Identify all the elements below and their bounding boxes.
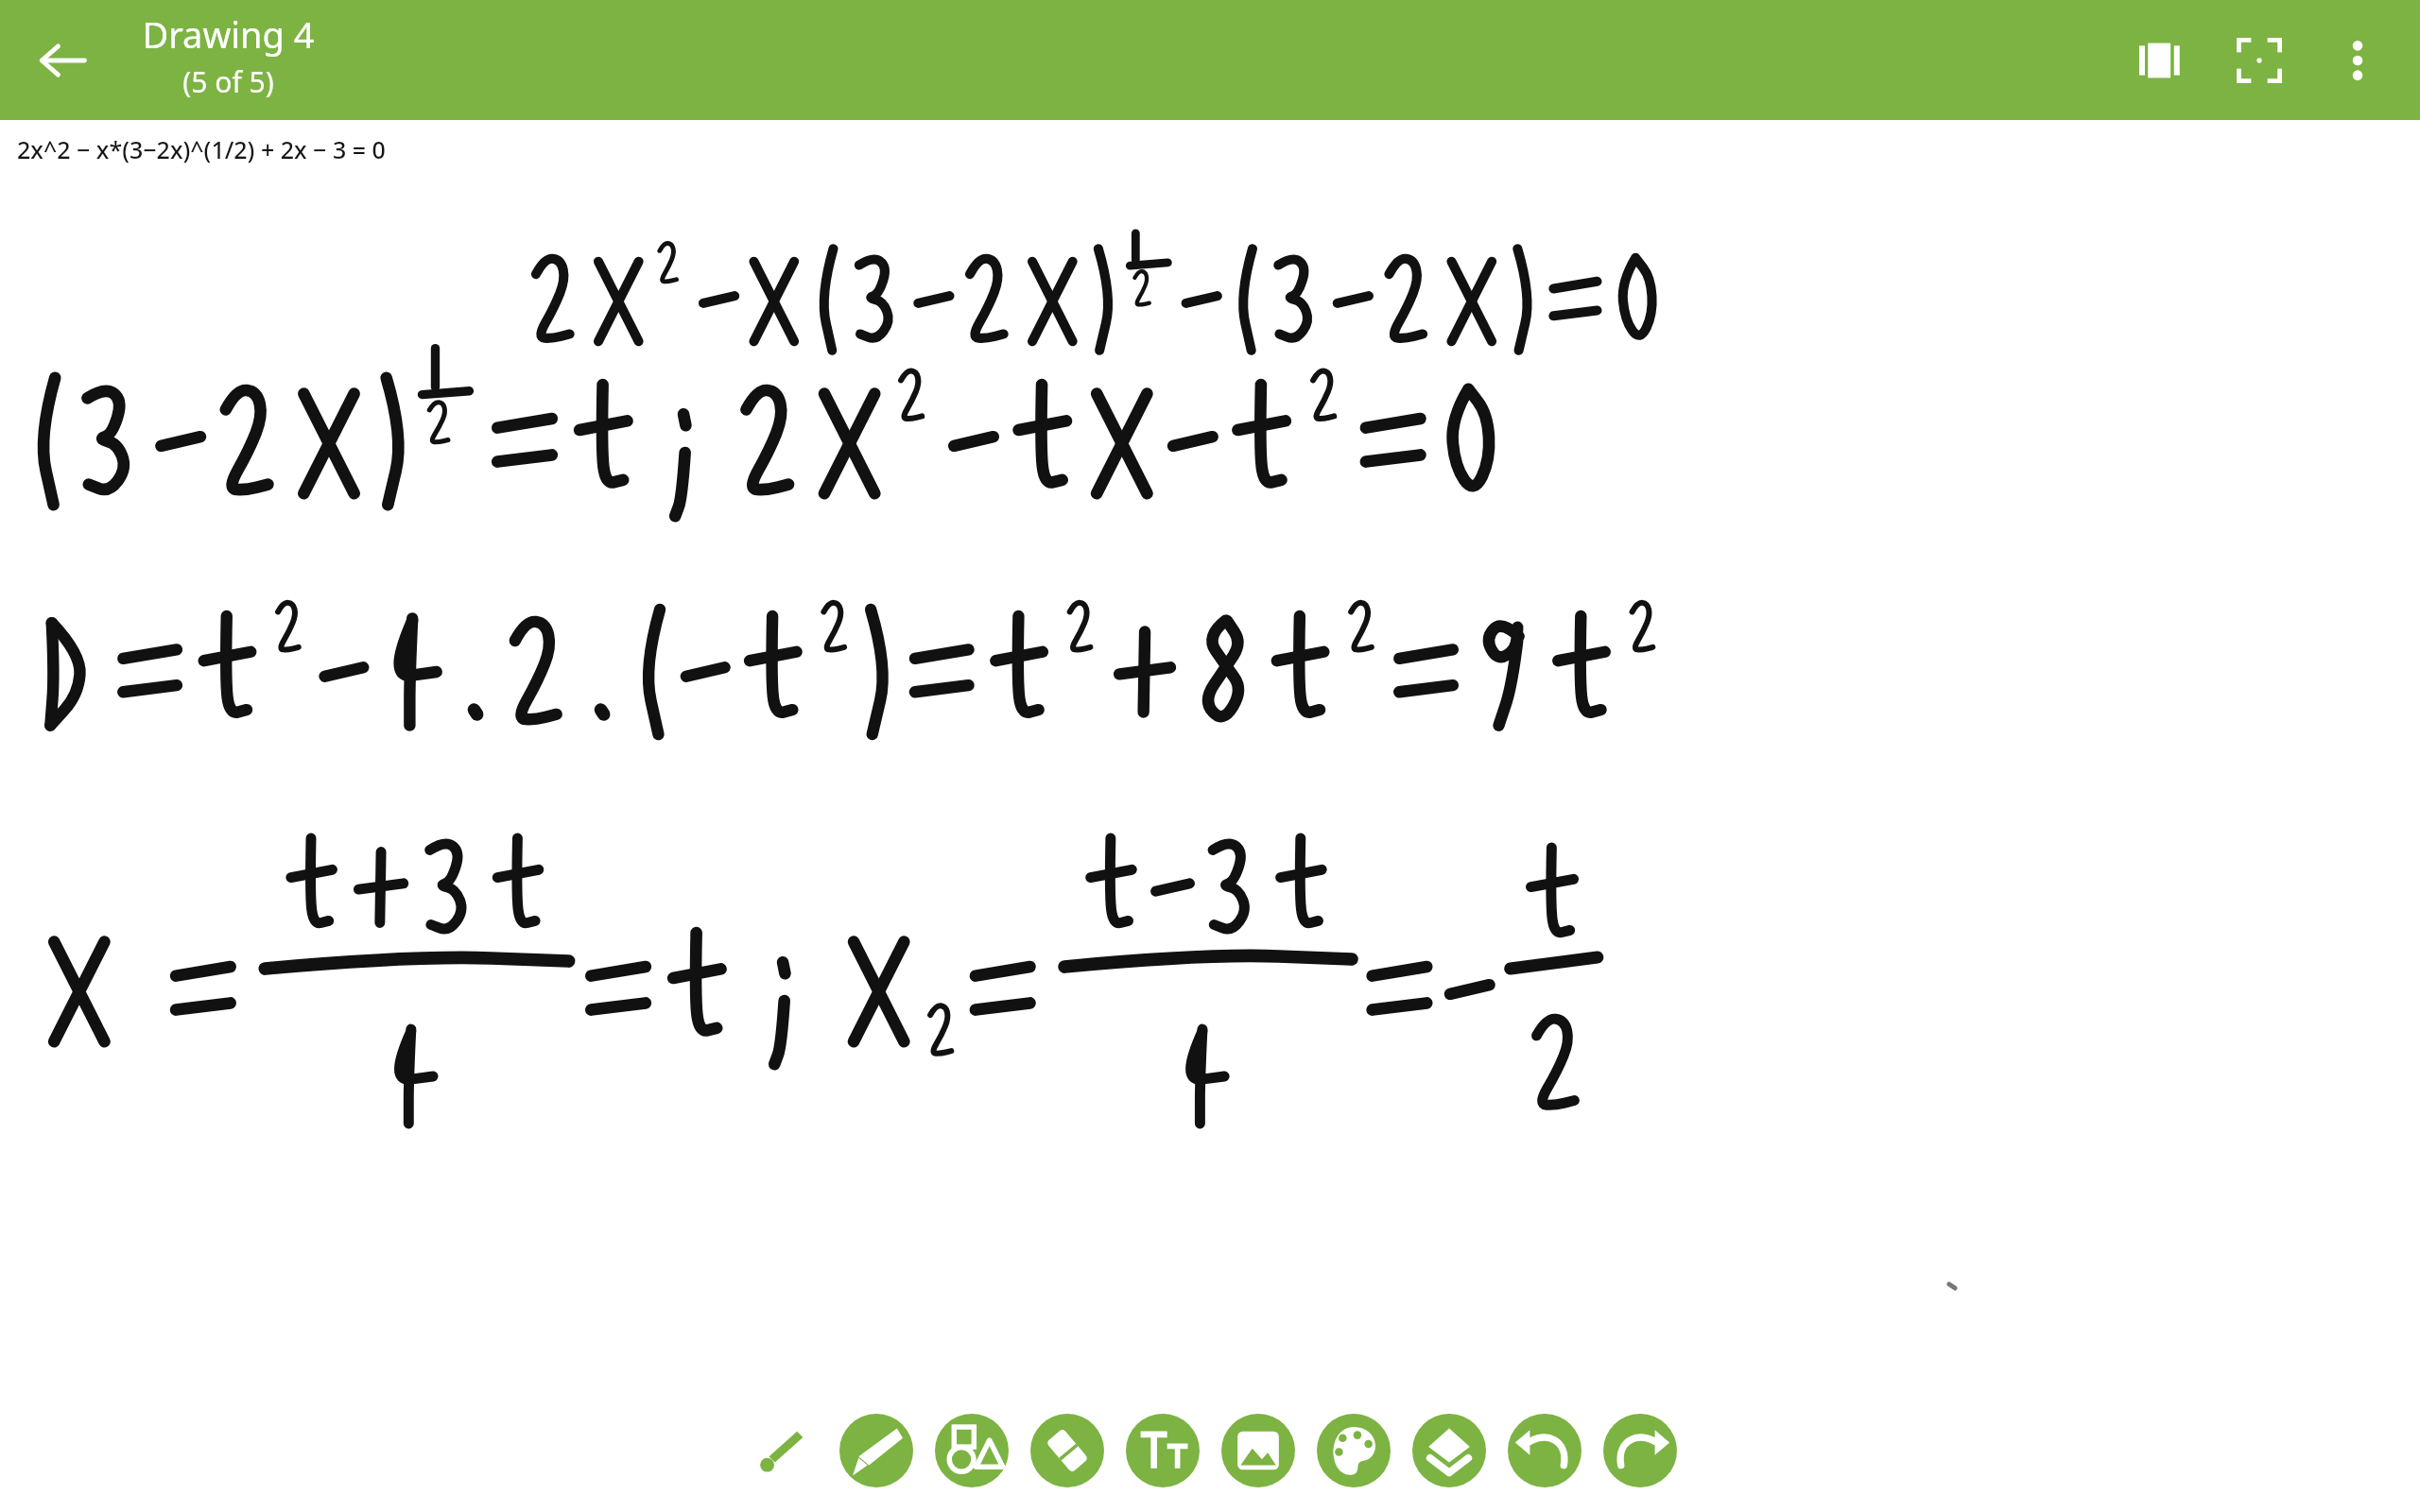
button[interactable]: Shapes	[935, 1414, 1009, 1487]
button[interactable]: Text	[1126, 1414, 1200, 1487]
button[interactable]: More options	[2312, 15, 2403, 106]
staticText: 2x^2 − x*(3−2x)^(1/2) + 2x − 3 = 0	[17, 133, 386, 165]
button[interactable]: Layers	[1412, 1414, 1486, 1487]
button[interactable]: Insert image	[1221, 1414, 1295, 1487]
staticText: Drawing 4	[142, 9, 315, 59]
button[interactable]: Colour palette	[1317, 1414, 1391, 1487]
button[interactable]: Fullscreen	[2214, 15, 2305, 106]
button[interactable]: Marker	[839, 1414, 913, 1487]
button[interactable]: Redo	[1603, 1414, 1677, 1487]
button[interactable]: Drawing 4	[142, 9, 315, 101]
button[interactable]: Undo	[1508, 1414, 1582, 1487]
staticText: (5 of 5)	[182, 62, 274, 101]
button[interactable]: Pages	[2116, 15, 2206, 106]
button[interactable]: Eraser	[1030, 1414, 1104, 1487]
button[interactable]: Back	[26, 25, 98, 96]
button[interactable]: Brush	[744, 1414, 818, 1487]
